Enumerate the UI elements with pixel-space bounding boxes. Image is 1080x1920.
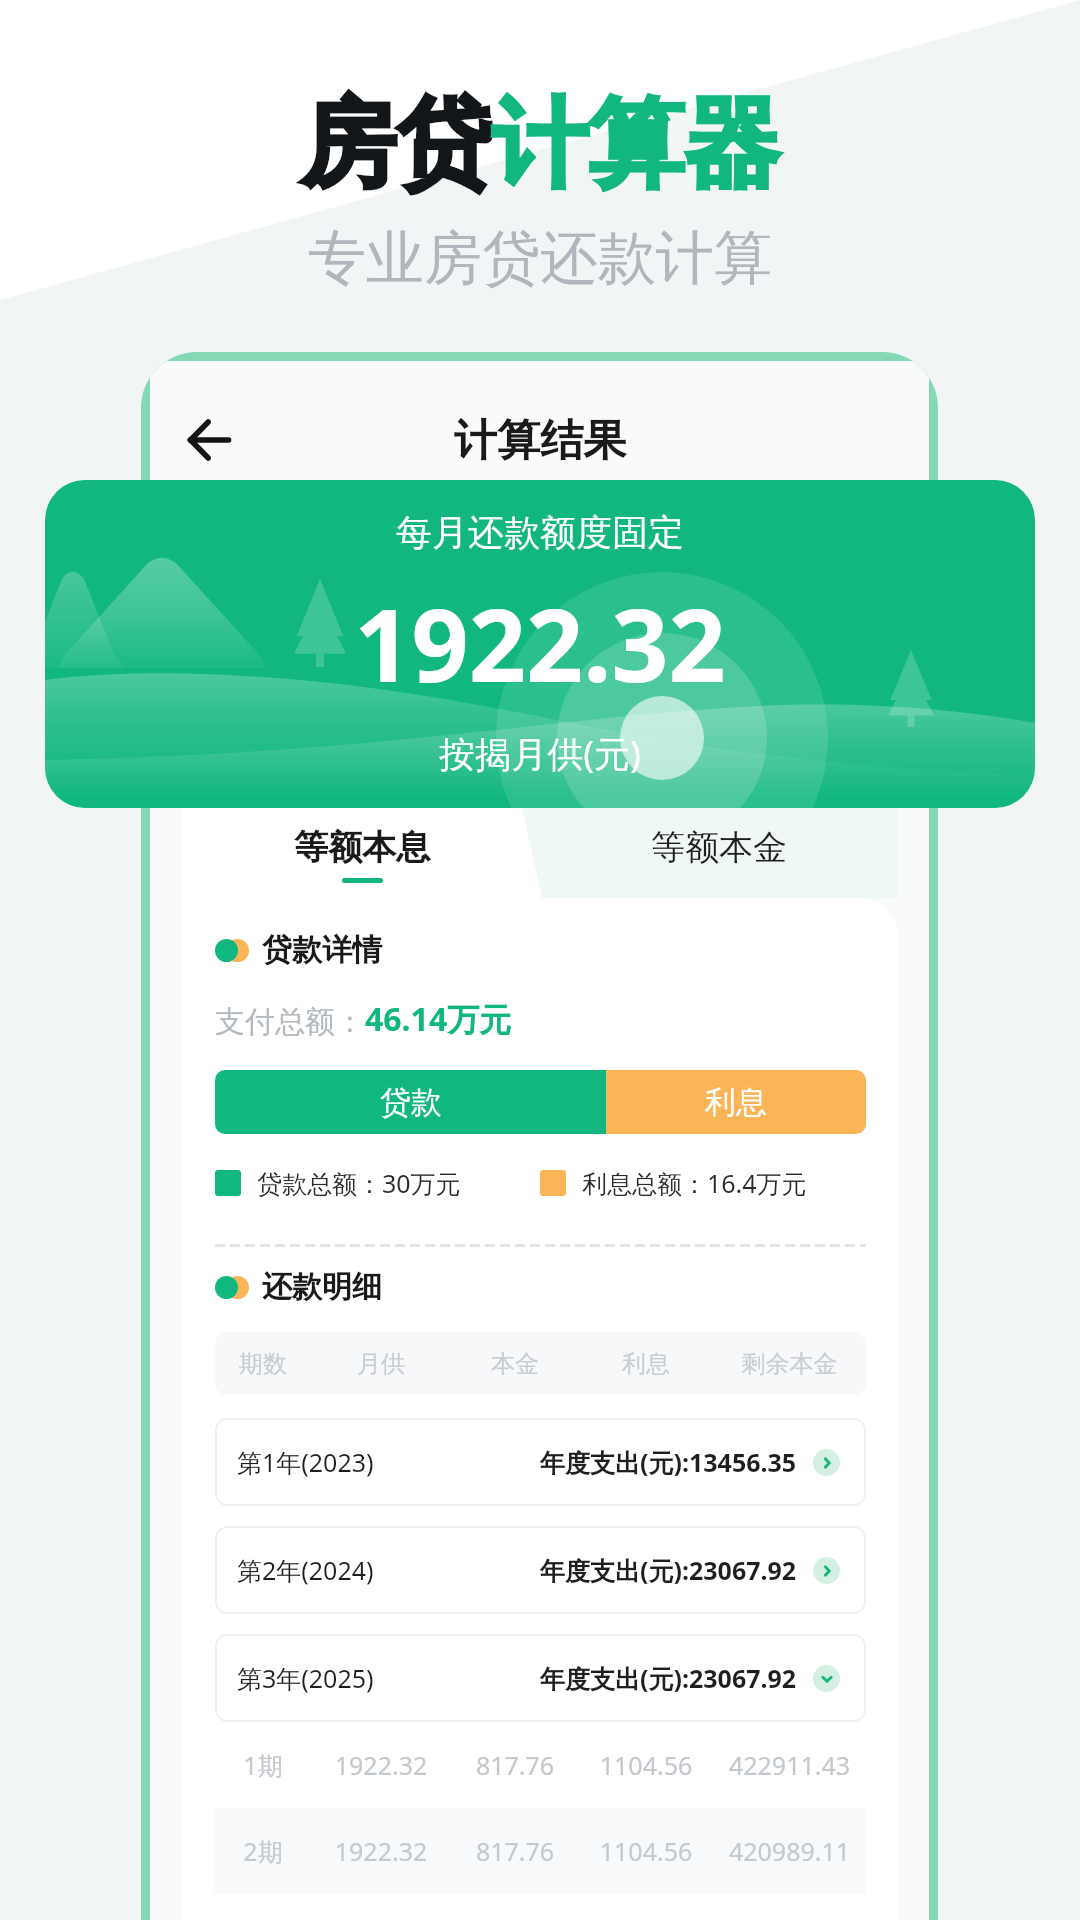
staticText: 第2年(2024) <box>237 1553 374 1587</box>
staticText: 计算器 <box>492 85 780 206</box>
staticText: 1922.32 <box>45 575 1035 711</box>
staticText: 2期 <box>215 1834 311 1868</box>
staticText: 年度支出(元):23067.92 <box>540 1661 797 1695</box>
staticText: 1104.56 <box>579 1834 713 1868</box>
staticText: 年度支出(元):13456.35 <box>540 1445 797 1479</box>
staticText: 每月还款额度固定 <box>45 510 1035 555</box>
staticText: 420989.11 <box>713 1834 866 1868</box>
staticText: 贷款总额：30万元 <box>257 1166 461 1200</box>
staticText: 计算结果 <box>0 414 1080 468</box>
staticText: 1104.56 <box>579 1748 713 1782</box>
staticText: 月供 <box>311 1349 451 1379</box>
staticText: 422911.43 <box>713 1748 866 1782</box>
button[interactable]: 第1年(2023) <box>215 1418 866 1506</box>
button[interactable]: 第2年(2024) <box>215 1526 866 1614</box>
staticText: 期数 <box>215 1349 311 1379</box>
staticText: 等额本金 <box>651 826 787 869</box>
staticText: 1922.32 <box>311 1748 451 1782</box>
button[interactable]: 等额本息 <box>183 808 540 898</box>
staticText: 支付总额： <box>215 1003 365 1041</box>
staticText: 等额本息 <box>294 826 430 869</box>
staticText: 46.14万元 <box>365 997 512 1041</box>
staticText: 年度支出(元):23067.92 <box>540 1553 797 1587</box>
staticText: 1期 <box>215 1748 311 1782</box>
staticText: 第3年(2025) <box>237 1661 374 1695</box>
staticText: 贷款详情 <box>262 931 382 969</box>
staticText: 817.76 <box>451 1748 579 1782</box>
staticText: 817.76 <box>451 1834 579 1868</box>
staticText: 利息总额：16.4万元 <box>582 1166 807 1200</box>
staticText: 按揭月供(元) <box>45 729 1035 778</box>
button[interactable]: 第3年(2025) <box>215 1634 866 1722</box>
staticText: 还款明细 <box>262 1268 382 1306</box>
staticText: 第1年(2023) <box>237 1445 374 1479</box>
staticText: 贷款 <box>380 1083 442 1122</box>
staticText: 1922.32 <box>311 1834 451 1868</box>
button[interactable]: 等额本金 <box>540 808 898 898</box>
staticText: 房贷 <box>300 85 492 206</box>
staticText: 利息 <box>579 1349 713 1379</box>
staticText: 专业房贷还款计算 <box>0 222 1080 295</box>
staticText: 利息 <box>705 1083 767 1122</box>
staticText: 剩余本金 <box>713 1349 866 1379</box>
button[interactable]: Back <box>189 420 229 460</box>
staticText: 本金 <box>451 1349 579 1379</box>
